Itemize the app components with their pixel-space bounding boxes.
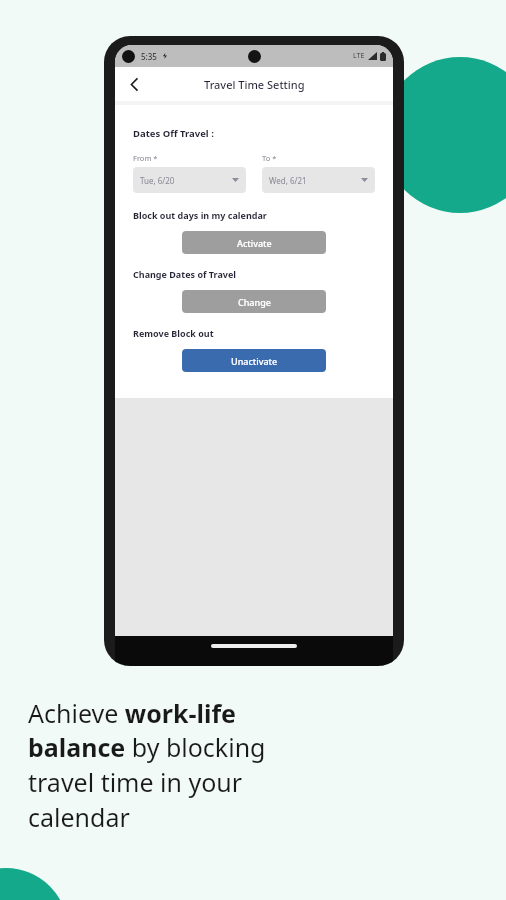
button[interactable]: Tue, 6/20 xyxy=(133,167,246,193)
staticText: Achieve work-life balance by blocking tr… xyxy=(28,696,338,835)
staticText: Wed, 6/21 xyxy=(269,175,307,186)
staticText: Unactivate xyxy=(231,355,278,367)
staticText: Change Dates of Travel xyxy=(133,268,237,280)
button[interactable]: Activate xyxy=(182,231,326,254)
staticText: Travel Time Setting xyxy=(204,77,305,92)
staticText: Change xyxy=(238,296,271,308)
button[interactable]: Unactivate xyxy=(182,349,326,372)
button[interactable]: Back xyxy=(121,71,147,97)
staticText: To * xyxy=(262,153,277,163)
staticText: Activate xyxy=(237,237,272,249)
staticText: Tue, 6/20 xyxy=(140,175,175,186)
button[interactable]: Change xyxy=(182,290,326,313)
staticText: From * xyxy=(133,153,158,163)
staticText: LTE xyxy=(353,51,365,61)
staticText: Remove Block out xyxy=(133,327,214,339)
staticText: Block out days in my calendar xyxy=(133,209,267,221)
staticText: 5:35 xyxy=(141,51,157,62)
staticText: Dates Off Travel : xyxy=(133,127,214,140)
button[interactable]: Wed, 6/21 xyxy=(262,167,375,193)
